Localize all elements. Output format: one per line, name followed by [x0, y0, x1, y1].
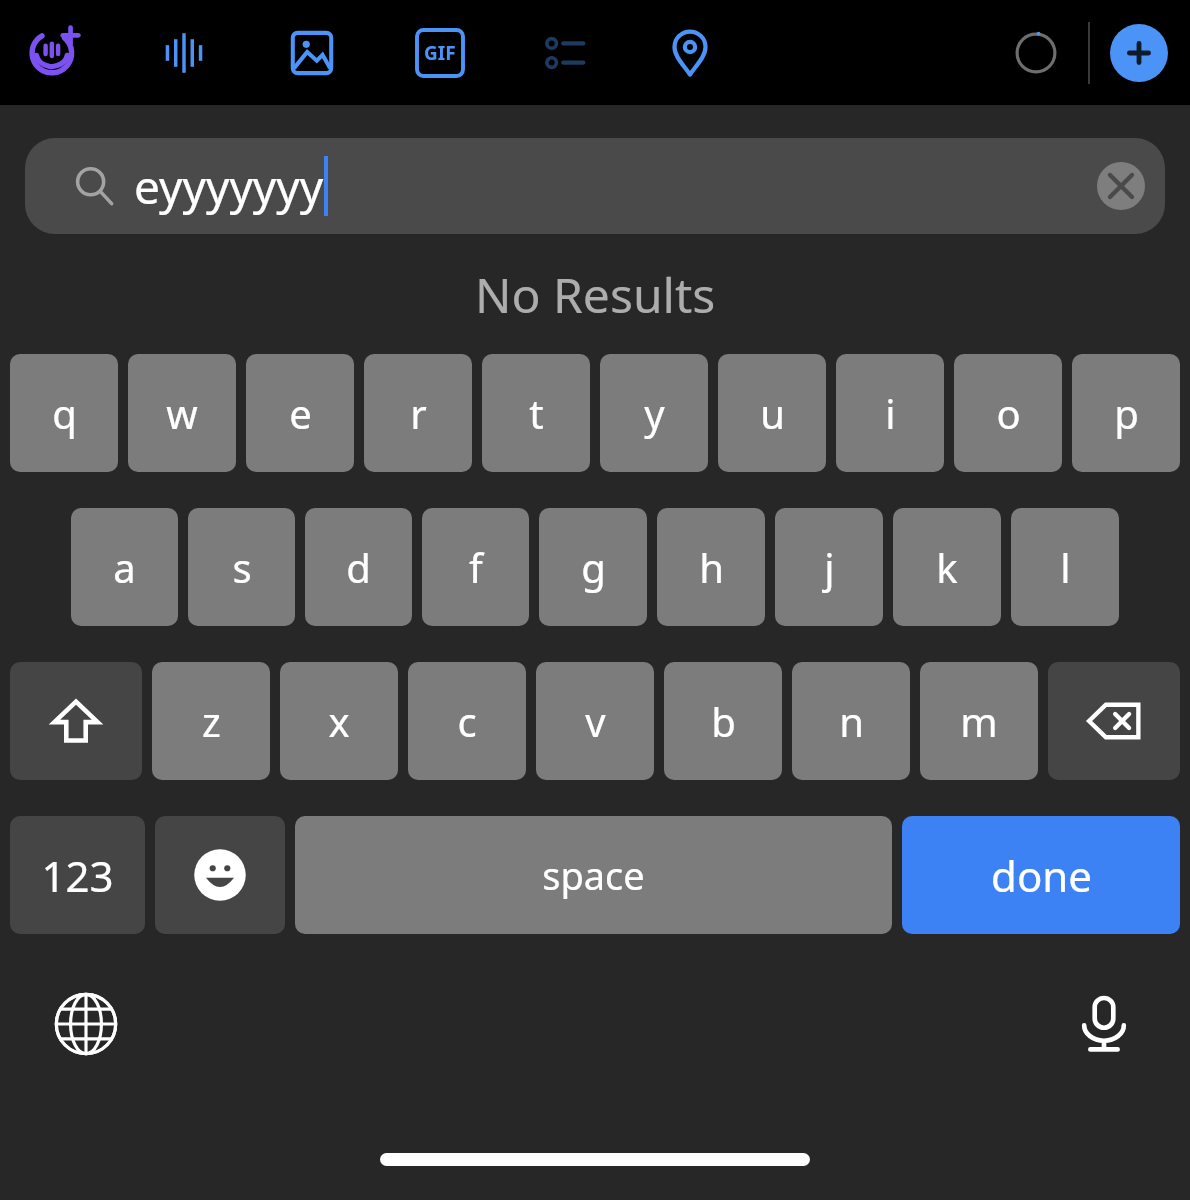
staticText: b	[711, 694, 736, 748]
button[interactable]: Dictation	[1060, 980, 1148, 1068]
staticText: x	[328, 694, 350, 748]
button[interactable]: n	[792, 662, 910, 780]
button[interactable]: Audio	[146, 15, 222, 91]
staticText: q	[52, 386, 77, 440]
staticText: h	[699, 540, 724, 594]
button[interactable]: 123	[10, 816, 145, 934]
button[interactable]: s	[188, 508, 295, 626]
button[interactable]: Photos	[274, 15, 350, 91]
staticText: GIF	[424, 40, 456, 66]
staticText: s	[232, 540, 252, 594]
button[interactable]: r	[364, 354, 472, 472]
staticText: o	[996, 386, 1021, 440]
staticText: done	[991, 847, 1092, 904]
staticText: space	[542, 849, 645, 901]
staticText: f	[469, 540, 483, 594]
staticText: i	[885, 386, 896, 440]
button[interactable]: done	[902, 816, 1180, 934]
button[interactable]: y	[600, 354, 708, 472]
staticText: e	[289, 386, 312, 440]
button[interactable]: w	[128, 354, 236, 472]
staticText: d	[346, 540, 371, 594]
staticText: n	[839, 694, 864, 748]
staticText: eyyyyyyy	[134, 155, 324, 218]
button[interactable]: q	[10, 354, 118, 472]
button[interactable]: i	[836, 354, 944, 472]
staticText: j	[824, 540, 835, 594]
button[interactable]: Backspace	[1048, 662, 1180, 780]
staticText: c	[457, 694, 477, 748]
staticText: u	[760, 386, 785, 440]
button[interactable]: p	[1072, 354, 1180, 472]
staticText: z	[202, 694, 221, 748]
staticText: g	[581, 540, 606, 594]
button[interactable]: List	[530, 15, 606, 91]
button[interactable]: e	[246, 354, 354, 472]
button[interactable]: a	[71, 508, 178, 626]
button[interactable]: j	[775, 508, 883, 626]
staticText: t	[529, 386, 544, 440]
button[interactable]: o	[954, 354, 1062, 472]
button[interactable]: u	[718, 354, 826, 472]
button[interactable]: k	[893, 508, 1001, 626]
button[interactable]: m	[920, 662, 1038, 780]
button[interactable]: Emoji	[155, 816, 285, 934]
button[interactable]: space	[295, 816, 892, 934]
staticText: k	[936, 540, 958, 594]
button[interactable]: b	[664, 662, 782, 780]
button[interactable]: Loading	[998, 15, 1074, 91]
button[interactable]: Location	[652, 15, 728, 91]
button[interactable]: g	[539, 508, 647, 626]
button[interactable]: Change keyboard language	[42, 980, 130, 1068]
staticText: No Results	[475, 262, 716, 327]
button[interactable]: x	[280, 662, 398, 780]
staticText: a	[113, 540, 136, 594]
button[interactable]: Memoji	[18, 15, 94, 91]
button[interactable]: d	[305, 508, 412, 626]
button[interactable]: l	[1011, 508, 1119, 626]
button[interactable]: h	[657, 508, 765, 626]
button[interactable]: z	[152, 662, 270, 780]
staticText: l	[1060, 540, 1071, 594]
button[interactable]: Add	[1110, 24, 1168, 82]
staticText: m	[960, 694, 998, 748]
button[interactable]: Shift	[10, 662, 142, 780]
staticText: v	[585, 694, 606, 748]
button[interactable]: v	[536, 662, 654, 780]
button[interactable]: GIF	[402, 15, 478, 91]
staticText: 123	[41, 847, 114, 904]
button[interactable]: f	[422, 508, 529, 626]
button[interactable]: Clear	[1097, 162, 1145, 210]
button[interactable]: t	[482, 354, 590, 472]
button[interactable]: c	[408, 662, 526, 780]
button[interactable]: eyyyyyyy	[25, 138, 1165, 234]
staticText: p	[1114, 386, 1139, 440]
staticText: r	[410, 386, 427, 440]
staticText: w	[166, 386, 198, 440]
staticText: y	[644, 386, 665, 440]
